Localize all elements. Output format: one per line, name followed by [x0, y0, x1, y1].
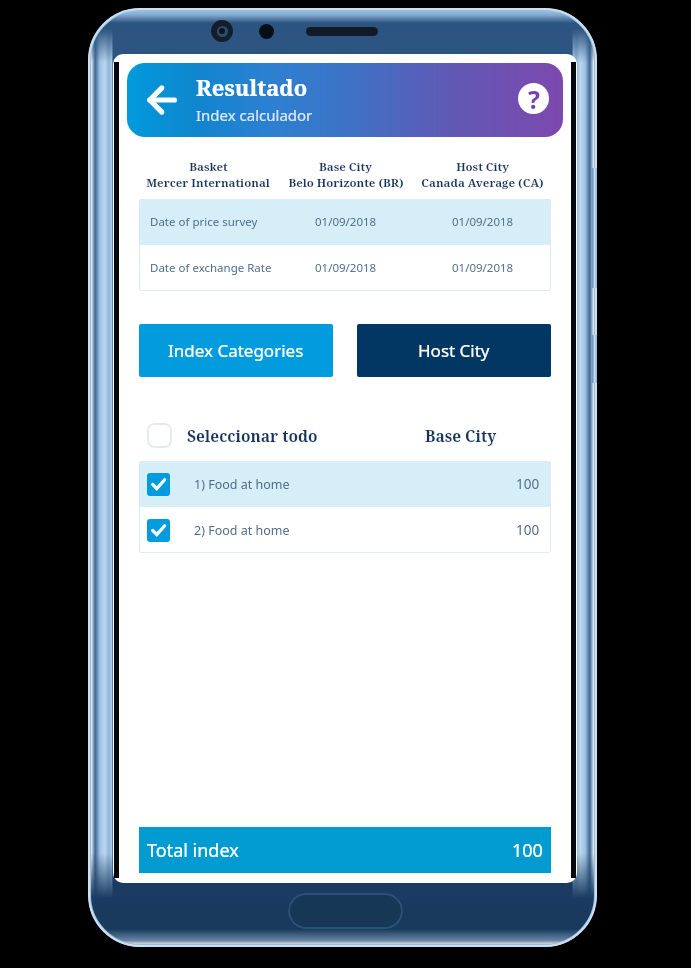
staticText: 100 [516, 521, 540, 539]
staticText: 01/09/2018 [315, 260, 377, 276]
staticText: Mercer International [146, 175, 270, 191]
button[interactable]: Host City [357, 324, 551, 377]
button[interactable]: Total index [139, 827, 551, 873]
staticText: Resultado [196, 72, 308, 102]
button[interactable]: 2) Food at home [139, 507, 551, 553]
staticText: Seleccionar todo [187, 425, 318, 446]
staticText: Basket [189, 159, 228, 175]
button[interactable]: Help [518, 83, 549, 114]
staticText: 2) Food at home [194, 522, 290, 539]
staticText: Host City [456, 159, 509, 175]
staticText: 100 [516, 475, 540, 493]
staticText: 01/09/2018 [452, 214, 514, 230]
staticText: Host City [418, 339, 490, 362]
staticText: Index calculador [196, 105, 313, 125]
staticText: Base City [319, 159, 372, 175]
staticText: Total index [147, 838, 239, 863]
staticText: 100 [512, 838, 543, 863]
staticText: Index Categories [168, 339, 304, 362]
button[interactable]: Select all [147, 423, 172, 448]
staticText: Base City [425, 425, 497, 446]
staticText: 01/09/2018 [452, 260, 514, 276]
staticText: 01/09/2018 [315, 214, 377, 230]
staticText: 1) Food at home [194, 476, 290, 493]
staticText: Belo Horizonte (BR) [288, 175, 404, 191]
staticText: ? [528, 83, 540, 113]
staticText: Canada Average (CA) [421, 175, 544, 191]
staticText: Date of exchange Rate [150, 260, 272, 276]
button[interactable]: Index Categories [139, 324, 333, 377]
button[interactable]: 1) Food at home [139, 461, 551, 507]
staticText: Date of price survey [150, 214, 258, 230]
button[interactable]: Back [139, 78, 183, 122]
